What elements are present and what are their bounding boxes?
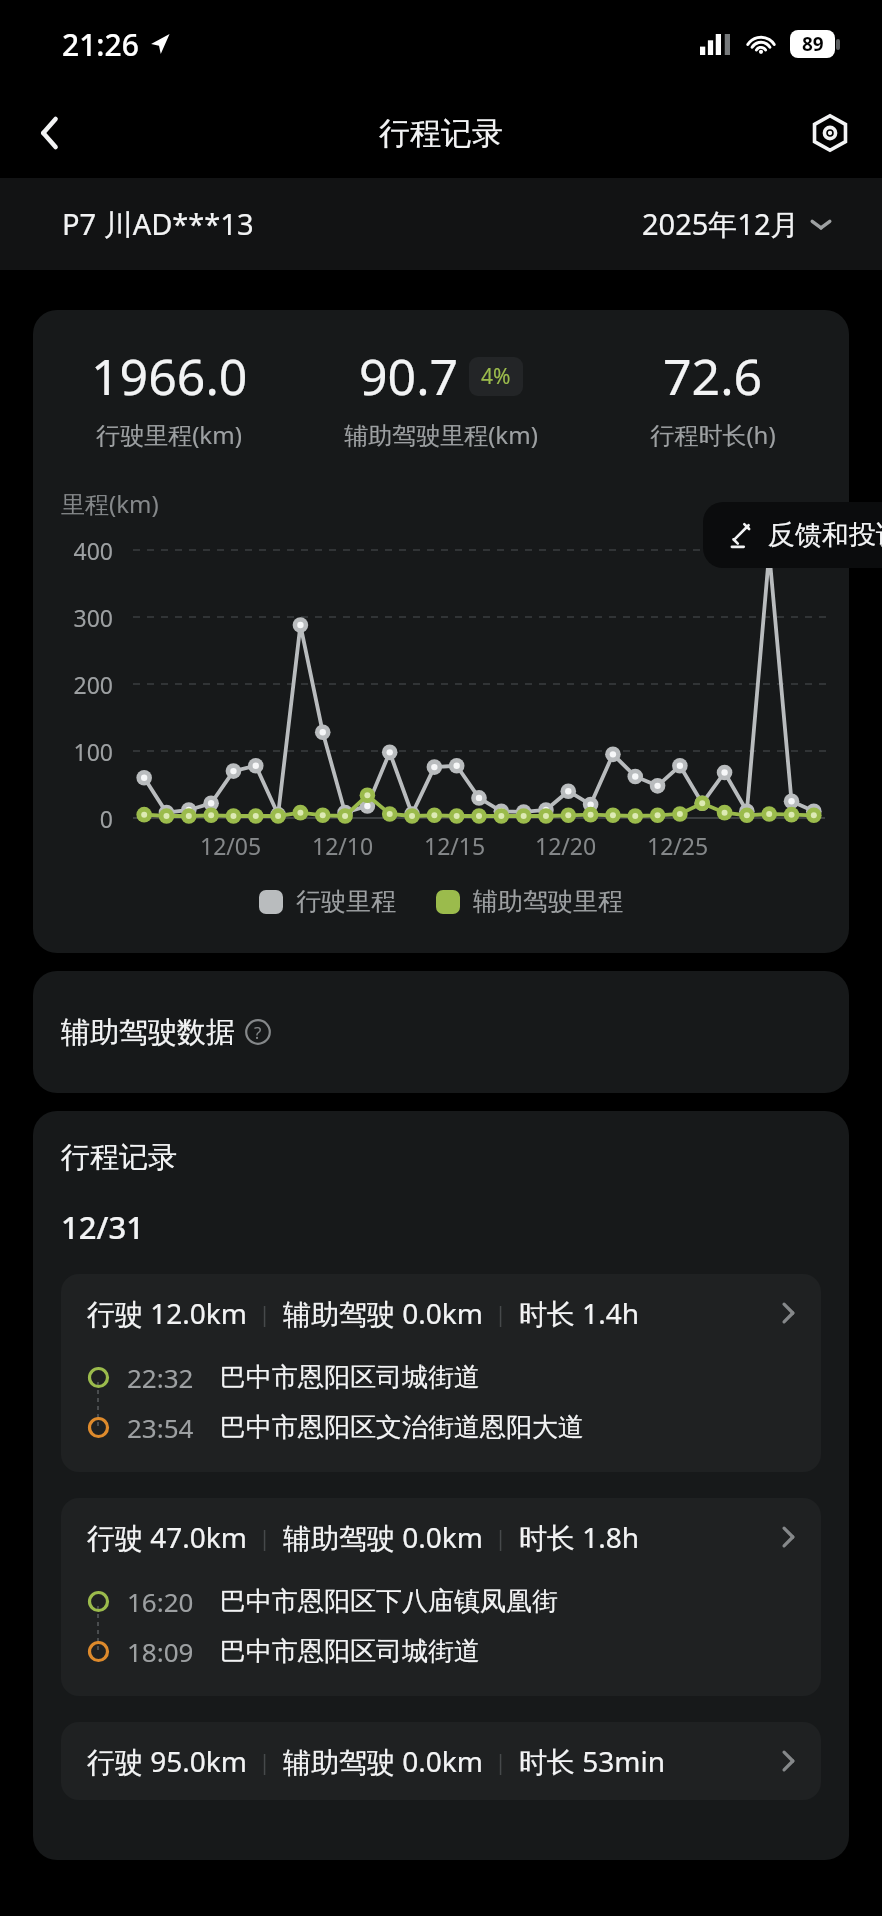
staticText: 辅助驾驶 0.0km (283, 1294, 483, 1332)
staticText: 巴中市恩阳区文治街道恩阳大道 (220, 1411, 584, 1444)
staticText: 23:54 (127, 1410, 194, 1445)
staticText: | (483, 1522, 519, 1552)
button[interactable]: Back (20, 103, 80, 163)
staticText: 300 (33, 602, 113, 633)
staticText: 辅助驾驶里程(km) (344, 418, 538, 451)
staticText: 辅助驾驶数据 (61, 1014, 235, 1051)
staticText: 22:32 (127, 1360, 194, 1395)
staticText: 16:20 (127, 1584, 194, 1619)
staticText: 12/15 (424, 830, 486, 861)
staticText: 行驶 47.0km (87, 1518, 247, 1556)
staticText: 行程记录 (61, 1139, 177, 1176)
staticText: 4% (481, 362, 511, 391)
staticText: 0 (33, 803, 113, 834)
staticText: 行驶 95.0km (87, 1742, 247, 1780)
staticText: ? (254, 1021, 262, 1044)
staticText: 90.7 (359, 342, 459, 410)
staticText: 100 (33, 736, 113, 767)
staticText: 12/20 (535, 830, 597, 861)
button[interactable]: 行驶 12.0km (61, 1274, 821, 1472)
staticText: | (247, 1298, 283, 1328)
staticText: 21:26 (62, 24, 139, 65)
staticText: 12/10 (312, 830, 374, 861)
staticText: 1966.0 (91, 342, 248, 410)
staticText: 反馈和投诉 (768, 518, 882, 552)
button[interactable]: 行驶 47.0km (61, 1498, 821, 1696)
staticText: 时长 1.8h (519, 1518, 640, 1556)
staticText: 行程记录 (379, 114, 503, 153)
button[interactable]: 反馈和投诉 (703, 502, 882, 568)
staticText: 行驶里程(km) (96, 418, 242, 451)
staticText: 辅助驾驶里程 (473, 886, 623, 917)
staticText: 时长 1.4h (519, 1294, 640, 1332)
staticText: 时长 53min (519, 1742, 666, 1780)
button[interactable]: 辅助驾驶数据 (33, 971, 849, 1093)
staticText: 12/05 (200, 830, 262, 861)
staticText: 行程时长(h) (650, 418, 776, 451)
staticText: 里程(km) (61, 487, 159, 520)
staticText: 12/25 (647, 830, 709, 861)
staticText: 18:09 (127, 1634, 194, 1669)
staticText: | (483, 1298, 519, 1328)
staticText: 200 (33, 669, 113, 700)
staticText: 400 (33, 535, 113, 566)
staticText: 辅助驾驶 0.0km (283, 1742, 483, 1780)
staticText: 巴中市恩阳区司城街道 (220, 1361, 480, 1394)
button[interactable]: 2025年12月 (642, 204, 832, 244)
staticText: 巴中市恩阳区司城街道 (220, 1635, 480, 1668)
staticText: 12/31 (61, 1206, 144, 1248)
button[interactable]: Settings (800, 103, 860, 163)
staticText: 2025年12月 (642, 204, 800, 244)
staticText: 辅助驾驶 0.0km (283, 1518, 483, 1556)
staticText: 行驶 12.0km (87, 1294, 247, 1332)
staticText: | (483, 1746, 519, 1776)
staticText: 72.6 (663, 342, 763, 410)
button[interactable]: 行驶 95.0km (61, 1722, 821, 1800)
staticText: P7 川AD***13 (62, 204, 254, 244)
staticText: 行驶里程 (296, 886, 396, 917)
staticText: | (247, 1522, 283, 1552)
staticText: | (247, 1746, 283, 1776)
staticText: 89 (802, 31, 824, 57)
staticText: 巴中市恩阳区下八庙镇凤凰街 (220, 1585, 558, 1618)
